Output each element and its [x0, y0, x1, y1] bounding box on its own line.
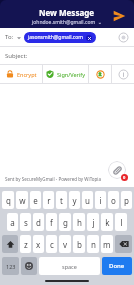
staticText: Sent by SecureMyGmail - Powered by WiTop… — [5, 176, 102, 182]
staticText: a — [10, 217, 15, 228]
staticText: c — [50, 239, 54, 250]
button[interactable]: z — [20, 235, 31, 253]
staticText: To: — [5, 33, 14, 41]
staticText: Encrypt — [17, 71, 37, 78]
staticText: jasonsmith@gmail.com — [28, 34, 83, 41]
staticText: r — [47, 195, 51, 206]
button[interactable]: q — [2, 191, 14, 209]
staticText: m — [103, 239, 111, 250]
button[interactable]: h — [73, 213, 85, 231]
staticText: w — [19, 195, 26, 206]
staticText: o — [111, 195, 116, 206]
staticText: v — [63, 239, 68, 250]
staticText: i — [99, 195, 102, 206]
staticText: p — [124, 195, 129, 206]
staticText: x — [36, 239, 41, 250]
button[interactable]: e — [30, 191, 41, 209]
button[interactable]: l — [115, 213, 127, 231]
button[interactable]: c — [46, 235, 57, 253]
button[interactable]: x — [33, 235, 44, 253]
staticText: z — [24, 239, 28, 250]
button[interactable]: Add contact — [117, 31, 129, 43]
staticText: y — [72, 195, 77, 206]
staticText: s — [24, 217, 28, 228]
staticText: k — [105, 217, 110, 228]
staticText: d — [36, 217, 41, 228]
button[interactable]: o — [108, 191, 119, 209]
button[interactable]: k — [101, 213, 113, 231]
staticText: t — [60, 195, 63, 206]
staticText: Sign/Verify — [57, 71, 85, 78]
button[interactable]: g — [59, 213, 71, 231]
button[interactable]: jasonsmith@gmail.com — [24, 32, 96, 43]
button[interactable]: m — [101, 235, 113, 253]
staticText: u — [85, 195, 90, 206]
staticText: space — [62, 263, 77, 270]
button[interactable]: a — [7, 213, 18, 231]
button[interactable]: t — [56, 191, 67, 209]
staticText: 123 — [6, 263, 16, 270]
button[interactable]: Info — [112, 65, 134, 83]
button[interactable]: f — [46, 213, 57, 231]
button[interactable]: Backspace — [115, 235, 132, 253]
button[interactable]: Send — [110, 7, 128, 25]
button[interactable]: space — [39, 257, 100, 275]
button[interactable]: Subject: — [0, 47, 134, 64]
button[interactable]: r — [43, 191, 54, 209]
button[interactable]: Encrypt — [0, 65, 42, 83]
button[interactable]: u — [82, 191, 93, 209]
button[interactable]: v — [59, 235, 71, 253]
button[interactable]: w — [16, 191, 28, 209]
staticText: n — [91, 239, 96, 250]
button[interactable]: s — [20, 213, 31, 231]
button[interactable]: Sign/Verify — [43, 65, 88, 83]
staticText: New Message — [39, 7, 95, 18]
staticText: b — [77, 239, 82, 250]
button[interactable]: Attach file — [108, 161, 126, 179]
button[interactable]: b — [73, 235, 85, 253]
button[interactable]: Expand recipients — [16, 35, 21, 40]
staticText: j — [92, 217, 95, 228]
button[interactable]: i — [95, 191, 106, 209]
staticText: l — [120, 217, 123, 228]
button[interactable]: Secure contacts — [89, 65, 111, 83]
staticText: f — [50, 217, 53, 228]
button[interactable]: j — [87, 213, 99, 231]
button[interactable]: d — [33, 213, 44, 231]
staticText: e — [33, 195, 38, 206]
button[interactable]: p — [121, 191, 132, 209]
button[interactable]: Emoji — [21, 257, 37, 275]
staticText: q — [6, 195, 11, 206]
staticText: g — [63, 217, 68, 228]
staticText: Subject: — [5, 52, 28, 60]
staticText: Done — [109, 262, 125, 270]
button[interactable]: Done — [102, 257, 132, 275]
staticText: 0 — [123, 175, 126, 180]
staticText: johndoe.smith@gmail.com ⌄ — [32, 19, 102, 26]
button[interactable]: n — [87, 235, 99, 253]
staticText: h — [77, 217, 82, 228]
button[interactable]: 123 — [2, 257, 19, 275]
button[interactable]: y — [69, 191, 80, 209]
button[interactable]: Shift — [2, 235, 18, 253]
